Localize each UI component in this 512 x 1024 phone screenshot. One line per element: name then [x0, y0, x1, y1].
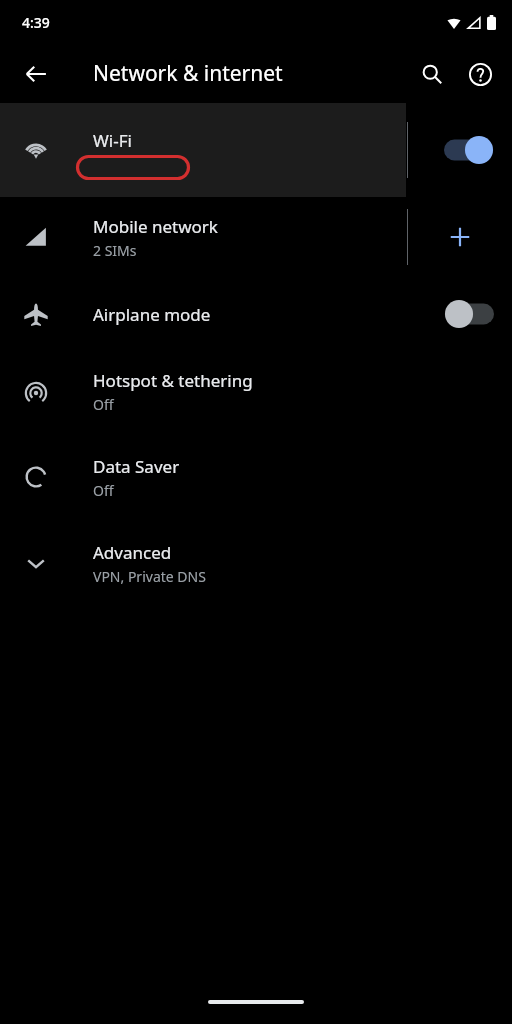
staticText: Data Saver: [93, 455, 180, 478]
button[interactable]: Mobile network: [0, 197, 406, 277]
staticText: Wi-Fi: [93, 129, 132, 152]
staticText: Network & internet: [93, 59, 283, 88]
button[interactable]: Airplane mode toggle: [438, 290, 500, 338]
button[interactable]: Wi-Fi toggle: [438, 126, 500, 174]
staticText: Off: [93, 481, 114, 500]
button[interactable]: Airplane mode: [0, 277, 512, 351]
staticText: 2 SIMs: [93, 241, 137, 260]
staticText: Mobile network: [93, 215, 218, 238]
button[interactable]: Wi-Fi: [0, 103, 406, 197]
button[interactable]: Hotspot & tethering: [0, 351, 512, 431]
staticText: Airplane mode: [93, 303, 211, 326]
staticText: VPN, Private DNS: [93, 567, 206, 586]
staticText: Off: [93, 395, 114, 414]
button[interactable]: Back: [14, 52, 58, 96]
staticText: 4:39: [22, 13, 50, 32]
button[interactable]: Advanced: [0, 523, 512, 603]
button[interactable]: Help: [456, 50, 504, 98]
button[interactable]: Data Saver: [0, 431, 512, 523]
staticText: Advanced: [93, 541, 172, 564]
staticText: Hotspot & tethering: [93, 369, 253, 392]
button[interactable]: Add SIM: [436, 213, 484, 261]
button[interactable]: Search: [408, 50, 456, 98]
